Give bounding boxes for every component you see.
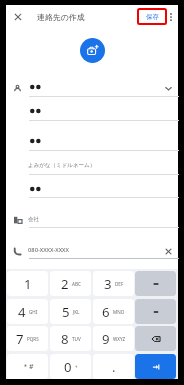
button[interactable]: ＊#: [7, 354, 48, 379]
button[interactable]: [6, 120, 178, 150]
button[interactable]: 4: [7, 299, 48, 324]
button[interactable]: 保存: [137, 8, 167, 25]
staticText: 4: [18, 303, 26, 321]
staticText: PQRS: [27, 336, 39, 342]
button[interactable]: スペース: [135, 299, 176, 324]
staticText: .: [112, 358, 116, 376]
staticText: 6: [102, 303, 110, 321]
staticText: 連絡先の作成: [37, 12, 85, 22]
button[interactable]: [6, 72, 178, 96]
button[interactable]: 削除: [135, 326, 176, 351]
button[interactable]: 9: [93, 326, 134, 351]
staticText: 3: [104, 275, 112, 293]
staticText: 9: [102, 330, 110, 348]
staticText: GHI: [29, 309, 38, 315]
staticText: よみがな（ミドルネーム）: [28, 162, 96, 169]
staticText: 会社: [28, 216, 39, 223]
button[interactable]: 7: [7, 326, 48, 351]
staticText: TUV: [72, 336, 81, 342]
button[interactable]: 閉じる: [7, 6, 29, 28]
button[interactable]: .: [93, 354, 134, 379]
staticText: 5: [62, 303, 70, 321]
staticText: JKL: [73, 309, 80, 315]
button[interactable]: その他のオプション: [160, 6, 182, 28]
button[interactable]: 1: [7, 271, 48, 296]
staticText: 7: [16, 330, 24, 348]
button[interactable]: 8: [50, 326, 91, 351]
button[interactable]: 次へ: [135, 354, 176, 379]
button[interactable]: [6, 197, 178, 227]
staticText: 2: [61, 275, 69, 293]
staticText: 0: [64, 358, 72, 376]
staticText: ABC: [72, 281, 81, 287]
button[interactable]: 写真を追加: [80, 38, 105, 63]
staticText: +: [75, 364, 78, 370]
button[interactable]: [6, 227, 178, 258]
staticText: MNO: [113, 309, 125, 315]
button[interactable]: 6: [93, 299, 134, 324]
staticText: 8: [61, 330, 69, 348]
button[interactable]: ハイフン: [135, 271, 176, 296]
staticText: 080-XXXX-XXXX: [28, 246, 69, 254]
staticText: DEF: [115, 281, 124, 287]
button[interactable]: [6, 174, 178, 198]
button[interactable]: [6, 96, 178, 120]
button[interactable]: 5: [50, 299, 91, 324]
staticText: 保存: [146, 13, 159, 21]
staticText: WXYZ: [113, 336, 126, 342]
button[interactable]: 2: [50, 271, 91, 296]
button[interactable]: 3: [93, 271, 134, 296]
staticText: ＊#: [22, 362, 34, 372]
button[interactable]: [6, 150, 178, 174]
staticText: 1: [24, 275, 32, 293]
button[interactable]: 0: [50, 354, 91, 379]
